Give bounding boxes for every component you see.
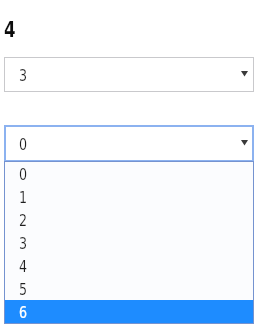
staticText: 4	[19, 257, 28, 276]
button[interactable]: 3	[4, 231, 254, 254]
staticText: 0	[19, 135, 28, 154]
staticText: 2	[19, 211, 28, 230]
staticText: 3	[19, 234, 28, 253]
button[interactable]: 4	[4, 254, 254, 277]
other: Open dropdown	[241, 140, 248, 146]
button[interactable]: 0	[4, 125, 254, 162]
staticText: 0	[19, 165, 28, 184]
staticText: 3	[19, 66, 28, 85]
button[interactable]: 1	[4, 185, 254, 208]
staticText: 6	[19, 303, 28, 322]
other: Open dropdown	[241, 71, 248, 77]
button[interactable]: 0	[4, 162, 254, 185]
staticText: 1	[19, 188, 28, 207]
button[interactable]: 2	[4, 208, 254, 231]
button[interactable]: 6	[4, 300, 254, 323]
button[interactable]: 5	[4, 277, 254, 300]
staticText: 4	[4, 18, 16, 42]
button[interactable]: 3	[4, 57, 254, 92]
staticText: 5	[19, 280, 28, 299]
